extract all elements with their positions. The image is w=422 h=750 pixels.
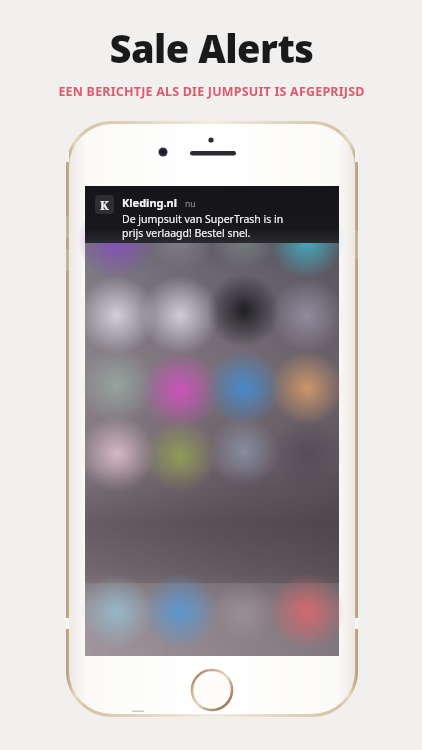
staticText: EEN BERICHTJE ALS DIE JUMPSUIT IS AFGEPR…: [58, 83, 365, 100]
staticText: nu: [185, 198, 196, 210]
button[interactable]: Home: [190, 668, 234, 712]
staticText: Sale Alerts: [109, 22, 314, 74]
staticText: K: [100, 197, 109, 213]
staticText: Kleding.nl: [122, 195, 178, 210]
staticText: De jumpsuit van SuperTrash is in prijs v…: [122, 212, 284, 240]
button[interactable]: K: [85, 186, 339, 243]
